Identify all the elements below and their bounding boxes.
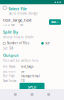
staticText: Size xyxy=(45,42,50,45)
button[interactable]: SELECT xyxy=(49,19,61,25)
staticText: 10 xyxy=(21,79,25,83)
staticText: /storage/emul xyxy=(21,74,40,78)
staticText: SELECT xyxy=(51,20,59,24)
button[interactable]: home xyxy=(31,93,33,96)
staticText: 50 xyxy=(9,47,13,50)
staticText: Split By xyxy=(3,29,18,34)
staticText: 12.4 MB · csv xyxy=(3,23,23,27)
staticText: Select File xyxy=(8,6,26,11)
staticText: test_large xyxy=(21,65,34,68)
staticText: Size xyxy=(3,47,8,50)
button[interactable]: SPLIT xyxy=(19,83,44,91)
staticText: Output xyxy=(3,53,19,58)
staticText: test_large_text xyxy=(3,17,32,23)
staticText: File Name xyxy=(3,65,16,68)
staticText: choose how to divide xyxy=(3,35,34,39)
staticText: Number of Files xyxy=(7,42,29,45)
button[interactable]: back xyxy=(14,93,17,96)
button[interactable]: recents xyxy=(47,93,50,96)
staticText: SPLIT xyxy=(27,84,36,90)
staticText: files will be written here xyxy=(3,59,39,62)
staticText: Start Index xyxy=(3,79,16,83)
staticText: File Path xyxy=(3,74,15,78)
staticText: tap to browse storage xyxy=(8,12,38,15)
staticText: Extension xyxy=(3,70,16,73)
staticText: csv xyxy=(21,70,24,73)
